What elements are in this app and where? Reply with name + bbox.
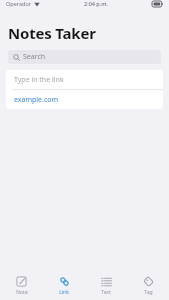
button[interactable]: example.com bbox=[6, 90, 163, 109]
staticText: example.com bbox=[14, 95, 59, 105]
button[interactable]: Type in the link bbox=[6, 70, 163, 89]
button[interactable]: Link bbox=[43, 276, 85, 296]
button[interactable]: Search bbox=[8, 50, 161, 64]
staticText: Notes Taker bbox=[8, 23, 96, 43]
button[interactable]: Text bbox=[85, 276, 127, 296]
staticText: Search bbox=[23, 52, 46, 62]
staticText: 2:04 p.m. bbox=[84, 0, 108, 7]
button[interactable]: Note bbox=[0, 276, 43, 296]
staticText: Text bbox=[101, 289, 111, 296]
staticText: Operador bbox=[6, 0, 32, 7]
staticText: Link bbox=[59, 289, 69, 296]
staticText: Type in the link bbox=[14, 75, 64, 85]
button[interactable]: Tag bbox=[127, 276, 169, 296]
staticText: Note bbox=[16, 289, 28, 296]
staticText: Tag bbox=[144, 289, 153, 296]
